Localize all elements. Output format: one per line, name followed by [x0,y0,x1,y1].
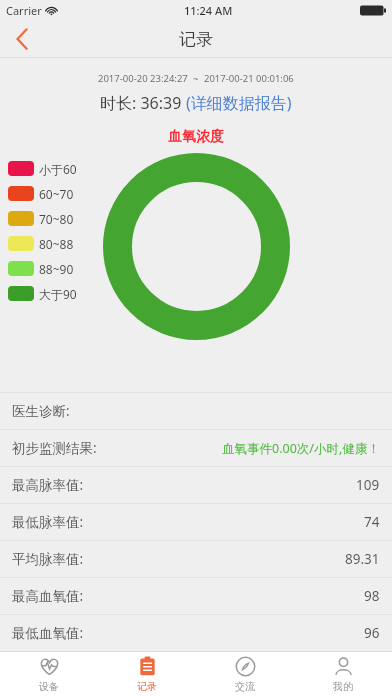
staticText: 我的 [333,680,353,693]
staticText: 记录 [179,29,213,50]
staticText: 记录 [137,680,157,693]
staticText: 2017-00-21 00:01:06 [204,72,294,85]
staticText: 最低血氧值: [12,624,84,642]
button[interactable]: 最低脉率值: [0,504,392,540]
staticText: 医生诊断: [12,402,70,420]
staticText: 89.31 [345,550,380,568]
button[interactable]: 最低血氧值: [0,615,392,651]
staticText: 大于90 [39,286,77,302]
staticText: 初步监测结果: [12,439,97,457]
staticText: 小于60 [39,161,77,177]
staticText: 74 [364,513,380,531]
staticText: 平均脉率值: [12,550,84,568]
staticText: Carrier [6,3,42,18]
button[interactable]: 平均脉率值: [0,541,392,577]
staticText: 60~70 [39,186,74,202]
staticText: (详细数据报告) [186,92,292,114]
button[interactable]: 初步监测结果: [0,430,392,466]
button[interactable]: 最高脉率值: [0,467,392,503]
staticText: 最高血氧值: [12,587,84,605]
button[interactable]: 医生诊断: [0,393,392,429]
staticText: 98 [364,587,380,605]
button[interactable]: Back [0,20,44,58]
staticText: 96 [364,624,380,642]
staticText: ~ [188,72,204,85]
staticText: 88~90 [39,261,74,277]
staticText: 时长: 36:39 [100,92,186,114]
staticText: 交流 [235,680,255,693]
button[interactable]: 设备 [0,652,98,696]
staticText: 最高脉率值: [12,476,84,494]
button[interactable]: 最高血氧值: [0,578,392,614]
staticText: 11:24 AM [184,3,233,18]
button[interactable]: (详细数据报告) [186,92,292,114]
staticText: 2017-00-20 23:24:27 [98,72,188,85]
staticText: 80~88 [39,236,74,252]
staticText: 血氧事件0.00次/小时,健康！ [222,440,380,457]
staticText: 109 [356,476,380,494]
button[interactable]: 记录 [98,652,196,696]
button[interactable]: 交流 [196,652,294,696]
button[interactable]: 我的 [294,652,392,696]
staticText: 设备 [39,680,59,693]
staticText: 最低脉率值: [12,513,84,531]
staticText: 血氧浓度 [168,128,224,146]
staticText: 70~80 [39,211,74,227]
